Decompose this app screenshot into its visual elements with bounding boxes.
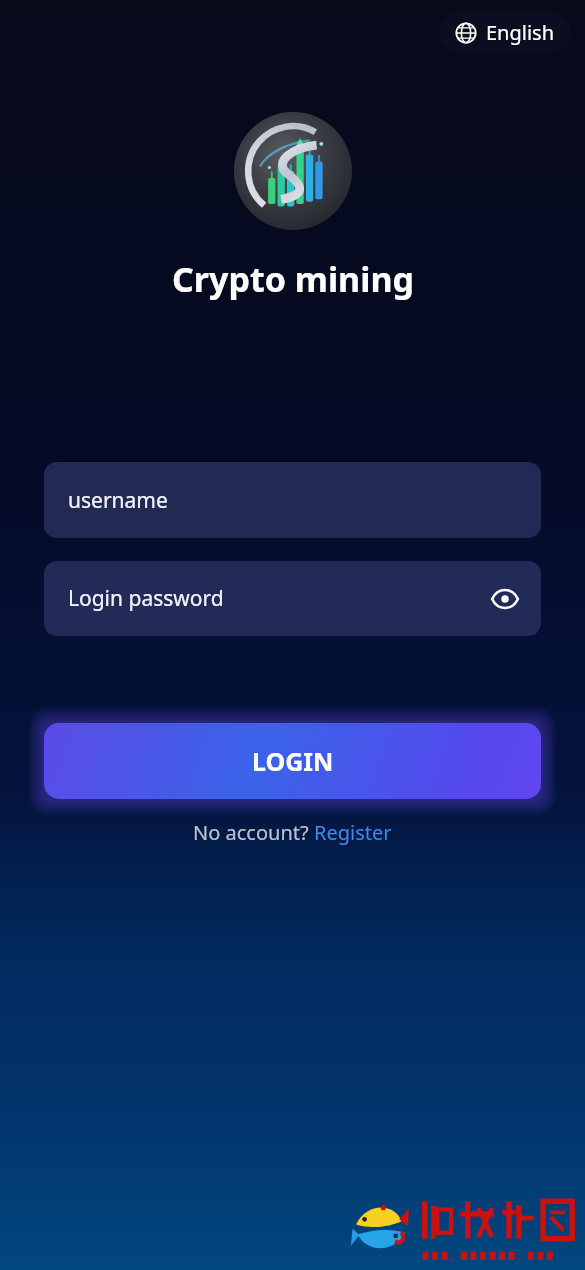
staticText: No account?	[193, 819, 314, 846]
button[interactable]: English	[439, 12, 571, 53]
staticText: LOGIN	[252, 744, 334, 778]
staticText: Register	[314, 819, 392, 846]
button[interactable]: LOGIN	[44, 723, 541, 799]
button[interactable]: No account?	[185, 815, 400, 850]
staticText: Crypto mining	[172, 256, 414, 302]
button[interactable]: Show password	[483, 577, 527, 621]
staticText: username	[68, 486, 168, 515]
button[interactable]: Login password	[44, 561, 541, 636]
staticText: Login password	[68, 584, 224, 613]
staticText: English	[486, 19, 555, 46]
button[interactable]: username	[44, 462, 541, 538]
